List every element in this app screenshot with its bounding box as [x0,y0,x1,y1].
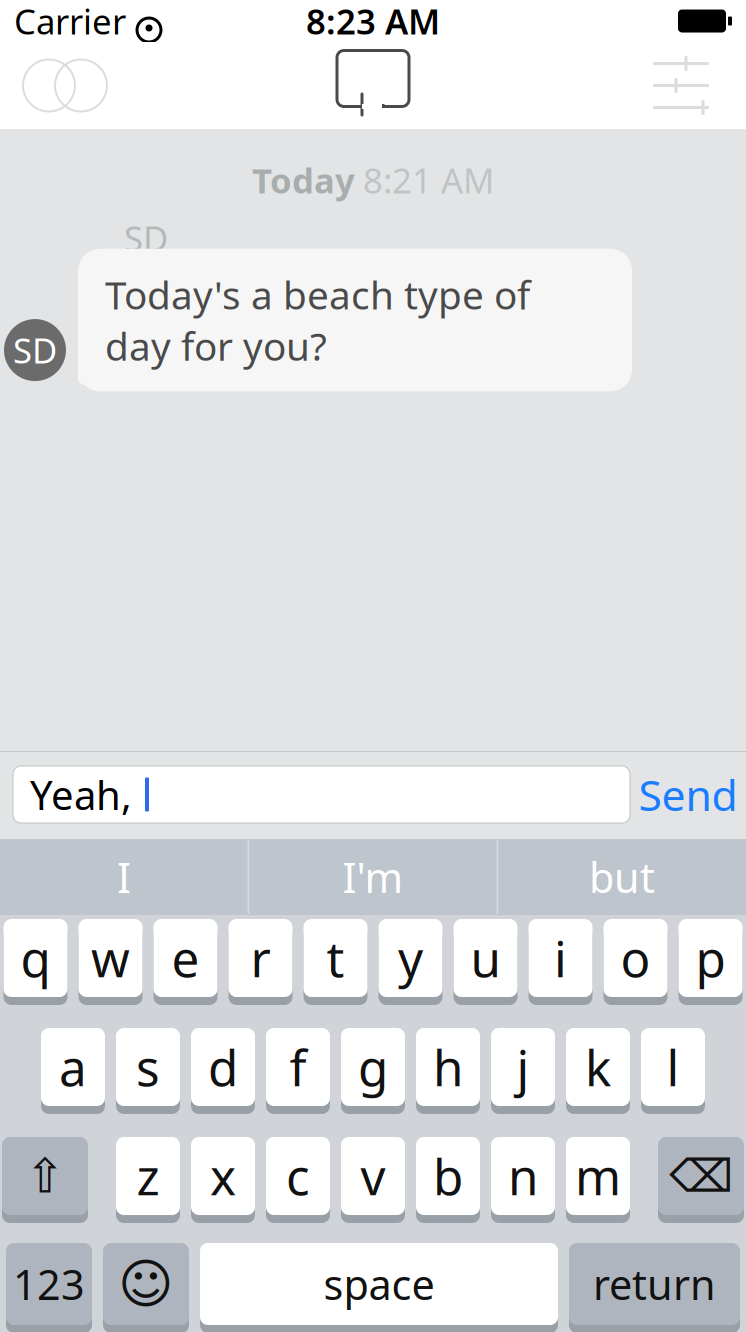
button[interactable]: z [116,1140,180,1220]
staticText: s [136,1034,160,1100]
staticText: a [59,1034,87,1100]
staticText: 8:23 AM [306,0,440,44]
staticText: j [516,1034,529,1100]
button[interactable]: e [153,922,217,1002]
button[interactable]: a [41,1031,105,1111]
button[interactable]: j [491,1031,555,1111]
button[interactable]: return [569,1246,740,1330]
staticText: k [585,1034,611,1100]
button[interactable]: Emoji [103,1246,189,1330]
staticText: t [326,925,344,991]
button[interactable]: x [191,1140,255,1220]
staticText: u [470,925,500,991]
button[interactable]: l [641,1031,705,1111]
button[interactable]: but [498,840,745,914]
button[interactable]: space [200,1246,558,1330]
staticText: z [136,1143,159,1209]
staticText: Today [252,157,355,203]
staticText: r [250,925,270,991]
button[interactable]: p [678,922,742,1002]
staticText: w [91,925,130,991]
button[interactable]: q [3,922,67,1002]
staticText: Today's a beach type of day for you? [105,269,530,371]
staticText: m [575,1143,621,1209]
staticText: f [289,1034,306,1100]
button[interactable]: k [566,1031,630,1111]
button[interactable]: u [453,922,517,1002]
button[interactable]: Messages [318,42,428,128]
button[interactable]: v [341,1140,405,1220]
button[interactable]: t [303,922,367,1002]
staticText: SD [13,327,57,373]
button[interactable]: Send [630,766,746,823]
button[interactable]: o [603,922,667,1002]
button[interactable]: Contacts [10,42,120,128]
staticText: but [589,850,655,904]
button[interactable]: w [78,922,142,1002]
staticText: SD [124,215,168,261]
button[interactable]: d [191,1031,255,1111]
staticText: i [554,925,567,991]
button[interactable]: I [0,840,247,914]
button[interactable]: c [266,1140,330,1220]
staticText: v [360,1143,385,1209]
staticText: g [358,1034,388,1100]
staticText: return [593,1257,716,1311]
button[interactable]: f [266,1031,330,1111]
staticText: h [433,1034,463,1100]
staticText: ⌫ [669,1150,733,1202]
staticText: d [208,1034,238,1100]
staticText: 123 [13,1257,85,1311]
staticText: p [695,925,725,991]
button[interactable]: Message text field [13,766,630,823]
staticText: n [508,1143,538,1209]
staticText: Yeah, [30,768,132,821]
button[interactable]: m [566,1140,630,1220]
staticText: o [620,925,650,991]
staticText: b [433,1143,463,1209]
staticText: ⇧ [25,1149,65,1203]
button[interactable]: b [416,1140,480,1220]
staticText: ☺ [118,1254,174,1314]
button[interactable]: s [116,1031,180,1111]
button[interactable]: h [416,1031,480,1111]
staticText: x [210,1143,236,1209]
button[interactable]: r [228,922,292,1002]
button[interactable]: Delete [658,1140,744,1220]
staticText: Send [638,766,737,823]
staticText: 8:21 AM [363,157,494,203]
button[interactable]: n [491,1140,555,1220]
staticText: l [666,1034,679,1100]
staticText: y [398,925,423,991]
staticText: I [117,850,131,904]
button[interactable]: g [341,1031,405,1111]
staticText: Carrier [14,0,126,44]
button[interactable]: I'm [249,840,496,914]
button[interactable]: i [528,922,592,1002]
button[interactable]: y [378,922,442,1002]
staticText: q [20,925,50,991]
staticText: c [286,1143,310,1209]
button[interactable]: Shift [2,1140,88,1220]
staticText: I'm [342,850,403,904]
staticText: space [323,1257,434,1311]
button[interactable]: 123 [6,1246,92,1330]
staticText: e [171,925,199,991]
button[interactable]: Settings [626,42,736,128]
